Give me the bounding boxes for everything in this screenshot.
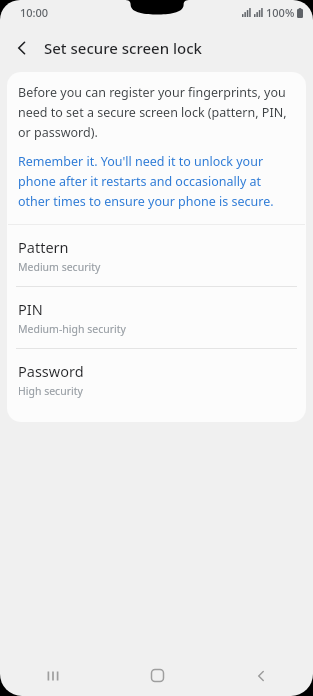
staticText: 10:00 [20, 5, 49, 20]
staticText: Medium-high security [18, 322, 126, 336]
button[interactable]: Back [0, 26, 44, 70]
staticText: Pattern [18, 237, 69, 257]
button[interactable]: PIN [7, 287, 306, 348]
staticText: Remember it. You'll need it to unlock yo… [18, 153, 295, 210]
staticText: High security [18, 384, 83, 398]
staticText: PIN [18, 299, 43, 319]
button[interactable]: Pattern [7, 225, 306, 286]
staticText: Set secure screen lock [44, 38, 202, 58]
staticText: Before you can register your fingerprint… [18, 84, 295, 141]
button[interactable]: Home [105, 655, 209, 696]
button[interactable]: Recent apps [0, 655, 105, 696]
button[interactable]: Password [7, 349, 306, 410]
button[interactable]: Back [209, 655, 313, 696]
staticText: Medium security [18, 260, 101, 274]
staticText: 100% [266, 5, 295, 20]
staticText: Password [18, 361, 84, 381]
